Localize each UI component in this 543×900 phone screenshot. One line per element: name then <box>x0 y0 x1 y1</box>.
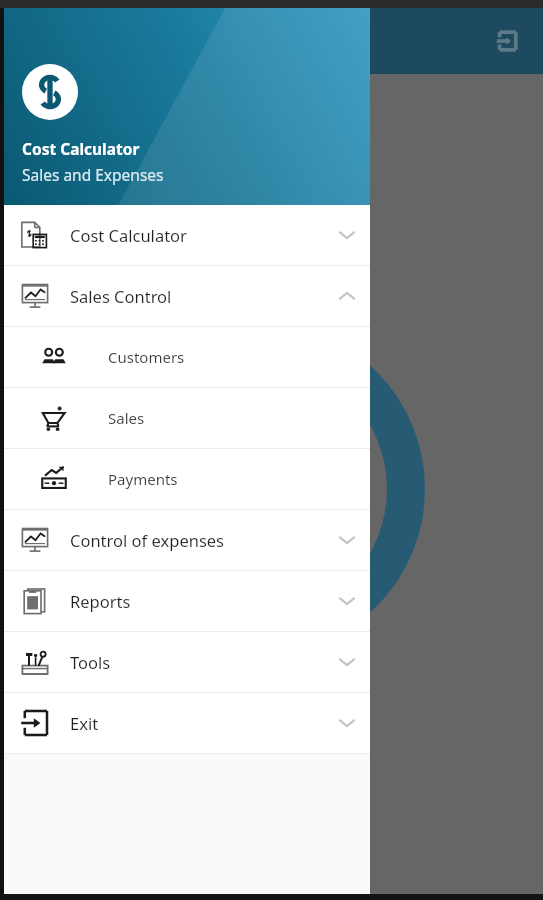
button[interactable]: Cost Calculator <box>0 205 370 265</box>
staticText: Exit <box>70 712 324 734</box>
staticText: Control of expenses <box>70 529 324 551</box>
staticText: Sales and Expenses <box>22 164 164 185</box>
staticText: Sales Control <box>70 285 324 307</box>
staticText: Payments <box>108 469 370 489</box>
button[interactable]: Tools <box>0 632 370 692</box>
staticText: Cost Calculator <box>70 224 324 246</box>
staticText: Customers <box>108 347 370 367</box>
button[interactable]: Control of expenses <box>0 510 370 570</box>
button[interactable]: Exit <box>0 693 370 753</box>
staticText: Tools <box>70 651 324 673</box>
staticText: Cost Calculator <box>22 138 140 159</box>
button[interactable]: Sales <box>0 388 370 448</box>
button[interactable]: Customers <box>0 327 370 387</box>
button[interactable]: Exit <box>485 19 529 63</box>
button[interactable]: Reports <box>0 571 370 631</box>
staticText: Reports <box>70 590 324 612</box>
button[interactable]: Payments <box>0 449 370 509</box>
staticText: Sales <box>108 408 370 428</box>
button[interactable]: Sales Control <box>0 266 370 326</box>
